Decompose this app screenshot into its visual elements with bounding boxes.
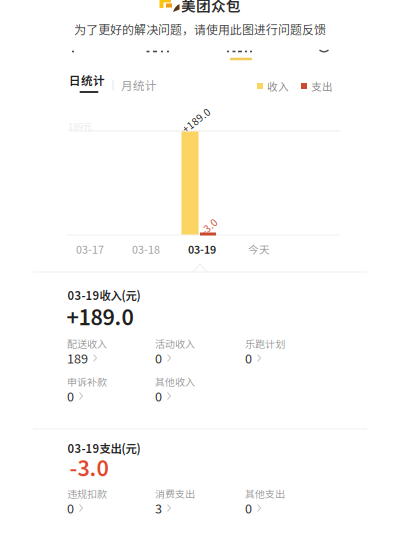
staticText: 3 [155,499,162,517]
staticText: 日统计 [69,71,105,88]
staticText: 0 [155,387,162,405]
staticText: 0 [67,499,74,517]
staticText: 美团众包 [181,0,241,16]
staticText: 今天 [248,241,270,257]
button[interactable]: 活动收入 [155,337,239,365]
staticText: 0 [67,387,74,405]
staticText: 支出 [311,78,333,94]
button[interactable]: 03-19 [177,240,227,258]
staticText: 其他支出 [245,486,285,501]
staticText: 违规扣款 [67,486,107,501]
staticText: 03-19支出(元) [67,440,140,456]
staticText: 月统计 [121,76,157,93]
button[interactable]: 月统计 [120,73,158,97]
staticText: 其他收入 [155,374,195,389]
staticText: 收入 [267,78,289,94]
button[interactable]: 乐跑计划 [245,337,329,365]
staticText: 消费支出 [155,486,195,501]
button[interactable]: 其他支出 [245,487,329,515]
staticText: 乐跑计划 [245,336,285,351]
staticText: 配送收入 [67,336,107,351]
button[interactable]: 今天 [234,240,284,258]
staticText: 为了更好的解决问题，请使用此图进行问题反馈 [74,20,326,38]
staticText: 0 [245,349,252,367]
staticText: 03-18 [132,241,160,257]
staticText: 申诉补款 [67,374,107,389]
button[interactable]: 其他收入 [155,375,239,403]
staticText: 0 [245,499,252,517]
staticText: +189.0 [66,301,133,331]
staticText: 活动收入 [155,336,195,351]
staticText: 03-19收入(元) [67,287,140,303]
staticText: -3.0 [200,219,218,233]
button[interactable]: 03-17 [65,240,115,258]
button[interactable]: 日统计 [69,73,107,97]
staticText: 189元 [68,119,92,133]
staticText: 0 [155,349,162,367]
staticText: 03-19 [188,241,216,257]
staticText: 03-17 [76,241,104,257]
staticText: 189 [67,349,88,367]
button[interactable]: 申诉补款 [67,375,151,403]
button[interactable]: 配送收入 [67,337,151,365]
button[interactable]: 03-18 [121,240,171,258]
button[interactable]: 违规扣款 [67,487,151,515]
staticText: -3.0 [69,452,108,482]
staticText: +189.0 [179,113,212,127]
button[interactable]: 消费支出 [155,487,239,515]
